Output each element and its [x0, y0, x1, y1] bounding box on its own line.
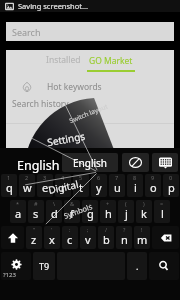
button[interactable]: Search: [149, 252, 179, 280]
button[interactable]: ": [26, 226, 42, 249]
button[interactable]: (: [118, 200, 134, 223]
button[interactable]: Installed: [40, 50, 87, 70]
staticText: ): [143, 200, 145, 207]
button[interactable]: 5: [73, 174, 89, 197]
button[interactable]: .: [127, 252, 147, 280]
staticText: ?123: [3, 271, 16, 279]
staticText: English: [73, 156, 108, 170]
staticText: 2: [25, 174, 29, 181]
staticText: !: [141, 226, 143, 233]
staticText: k: [141, 206, 147, 221]
staticText: ?: [123, 226, 126, 233]
staticText: \: [53, 200, 56, 207]
button[interactable]: English: [62, 153, 118, 172]
button[interactable]: \: [46, 200, 62, 223]
button[interactable]: Backspace: [152, 226, 179, 249]
button[interactable]: :: [62, 226, 78, 249]
staticText: g: [87, 206, 94, 221]
staticText: #: [34, 200, 38, 207]
button[interactable]: 0: [163, 174, 179, 197]
staticText: f: [70, 206, 74, 221]
button[interactable]: 3: [37, 174, 53, 197]
staticText: Hot keywords: [47, 81, 102, 93]
staticText: 9: [151, 174, 155, 181]
button[interactable]: ': [44, 226, 60, 249]
staticText: 7: [115, 174, 119, 181]
staticText: v: [85, 232, 91, 247]
staticText: ': [51, 226, 53, 233]
staticText: x: [49, 232, 55, 247]
button[interactable]: *: [10, 200, 26, 223]
staticText: T9: [39, 260, 50, 272]
staticText: q: [6, 180, 13, 195]
staticText: :: [69, 226, 71, 233]
staticText: Search: [12, 26, 41, 38]
staticText: English: [17, 157, 60, 174]
staticText: Digital: [47, 177, 80, 197]
staticText: Settings: [46, 129, 87, 149]
staticText: =: [160, 200, 164, 207]
staticText: -: [89, 200, 91, 207]
staticText: /: [105, 226, 108, 233]
staticText: c: [67, 232, 73, 247]
staticText: &: [70, 200, 75, 207]
button[interactable]: &: [64, 200, 80, 223]
button[interactable]: 4: [55, 174, 71, 197]
button[interactable]: Hot keywords: [6, 79, 174, 95]
button[interactable]: /: [98, 226, 114, 249]
staticText: j: [125, 206, 128, 221]
staticText: n: [121, 232, 128, 247]
button[interactable]: Shift: [1, 226, 24, 249]
button[interactable]: !: [134, 226, 150, 249]
staticText: e: [42, 180, 49, 195]
staticText: r: [61, 180, 66, 195]
button[interactable]: 6: [91, 174, 107, 197]
button[interactable]: 7: [109, 174, 125, 197]
staticText: 3: [43, 174, 47, 181]
staticText: a: [15, 206, 22, 221]
staticText: 4: [61, 174, 65, 181]
button[interactable]: 2: [19, 174, 35, 197]
button[interactable]: ?: [116, 226, 132, 249]
button[interactable]: ): [136, 200, 152, 223]
staticText: w: [23, 180, 32, 195]
staticText: .: [136, 260, 139, 272]
button[interactable]: +: [100, 200, 116, 223]
staticText: +: [106, 200, 110, 207]
button[interactable]: 9: [145, 174, 161, 197]
button[interactable]: Handwriting: [122, 153, 149, 172]
button[interactable]: T9: [33, 252, 55, 280]
button[interactable]: GO Market: [87, 50, 135, 72]
staticText: o: [150, 180, 157, 195]
button[interactable]: Search: [6, 22, 174, 41]
staticText: Symbols: [62, 201, 94, 221]
staticText: z: [31, 232, 37, 247]
staticText: ": [33, 226, 36, 233]
button[interactable]: =: [154, 200, 170, 223]
staticText: y: [96, 180, 102, 195]
staticText: s: [33, 206, 39, 221]
button[interactable]: Keyboard: [152, 153, 178, 172]
button[interactable]: ?123: [1, 252, 31, 280]
staticText: ;: [87, 226, 89, 233]
button[interactable]: 1: [1, 174, 17, 197]
staticText: u: [114, 180, 121, 195]
button[interactable]: ;: [80, 226, 96, 249]
staticText: Search history: [12, 98, 69, 110]
button[interactable]: -: [82, 200, 98, 223]
button[interactable]: 8: [127, 174, 143, 197]
button[interactable]: #: [28, 200, 44, 223]
staticText: b: [103, 232, 110, 247]
staticText: m: [137, 232, 148, 247]
staticText: t: [79, 180, 83, 195]
staticText: 6: [97, 174, 101, 181]
button[interactable]: Search history: [6, 96, 174, 112]
staticText: 8: [133, 174, 137, 181]
staticText: *: [16, 200, 20, 207]
staticText: l: [161, 206, 164, 221]
staticText: i: [134, 180, 137, 195]
staticText: Switch layout: [68, 101, 109, 125]
staticText: GO Market: [89, 55, 133, 67]
staticText: (: [125, 200, 127, 207]
